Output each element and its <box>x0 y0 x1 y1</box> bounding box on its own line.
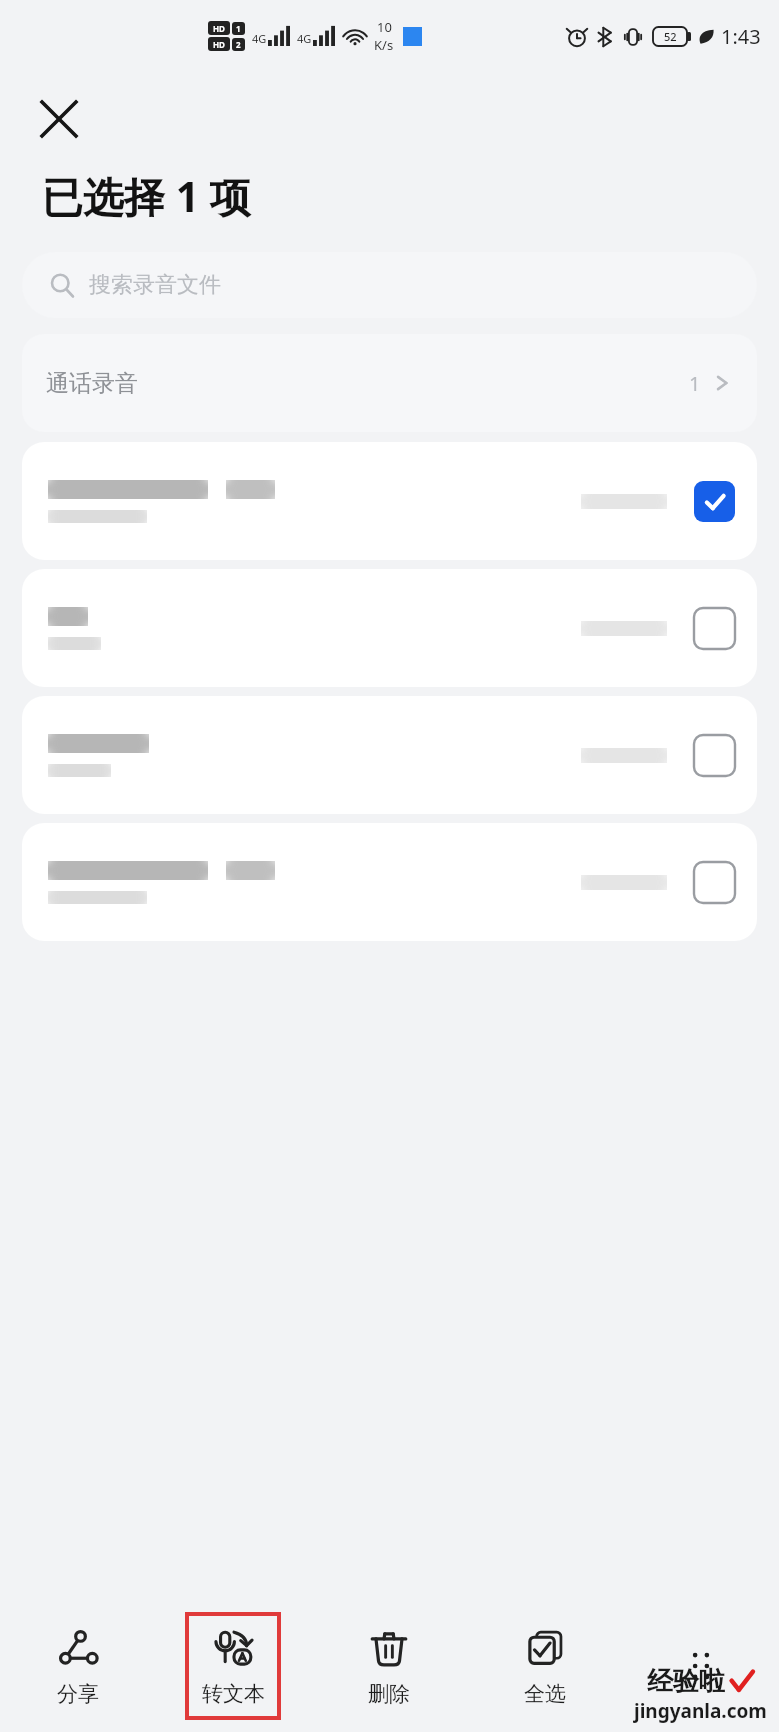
staticText: HD <box>213 23 225 34</box>
button[interactable]: 关闭 <box>32 92 86 146</box>
button[interactable]: 已选中 <box>22 442 757 560</box>
button[interactable]: 搜索录音文件 <box>22 252 757 318</box>
staticText: 搜索录音文件 <box>89 271 221 299</box>
staticText: 10 <box>377 18 392 36</box>
staticText: 已选择 1 项 <box>42 168 251 224</box>
staticText: 经验啦 <box>647 1665 725 1698</box>
staticText: 通话录音 <box>46 369 138 398</box>
button[interactable]: 全选 <box>467 1600 623 1732</box>
button[interactable]: 分享 <box>0 1600 155 1732</box>
button[interactable]: 转文本 <box>155 1600 311 1732</box>
staticText: 4G <box>297 31 312 46</box>
staticText: HD <box>213 39 225 50</box>
staticText: 4G <box>252 31 267 46</box>
staticText: jingyanla.com <box>634 1698 767 1724</box>
button[interactable]: 未选中 <box>22 823 757 941</box>
button[interactable]: 未选中 <box>691 732 737 778</box>
button[interactable]: 未选中 <box>22 696 757 814</box>
staticText: 分享 <box>57 1681 99 1707</box>
button[interactable]: 更多 <box>623 1600 779 1732</box>
button[interactable]: 未选中 <box>22 569 757 687</box>
staticText: 2 <box>236 39 241 50</box>
button[interactable]: 未选中 <box>691 859 737 905</box>
staticText: 删除 <box>368 1681 410 1707</box>
button[interactable]: 未选中 <box>691 605 737 651</box>
button[interactable]: 通话录音 <box>22 334 757 432</box>
staticText: K/s <box>374 36 394 54</box>
staticText: 52 <box>664 29 677 44</box>
staticText: 全选 <box>524 1681 566 1707</box>
staticText: 1:43 <box>721 23 761 50</box>
button[interactable]: 删除 <box>311 1600 467 1732</box>
staticText: 1 <box>689 370 701 397</box>
staticText: 1 <box>236 23 241 34</box>
button[interactable]: 已选中 <box>691 478 737 524</box>
staticText: 转文本 <box>202 1681 265 1707</box>
